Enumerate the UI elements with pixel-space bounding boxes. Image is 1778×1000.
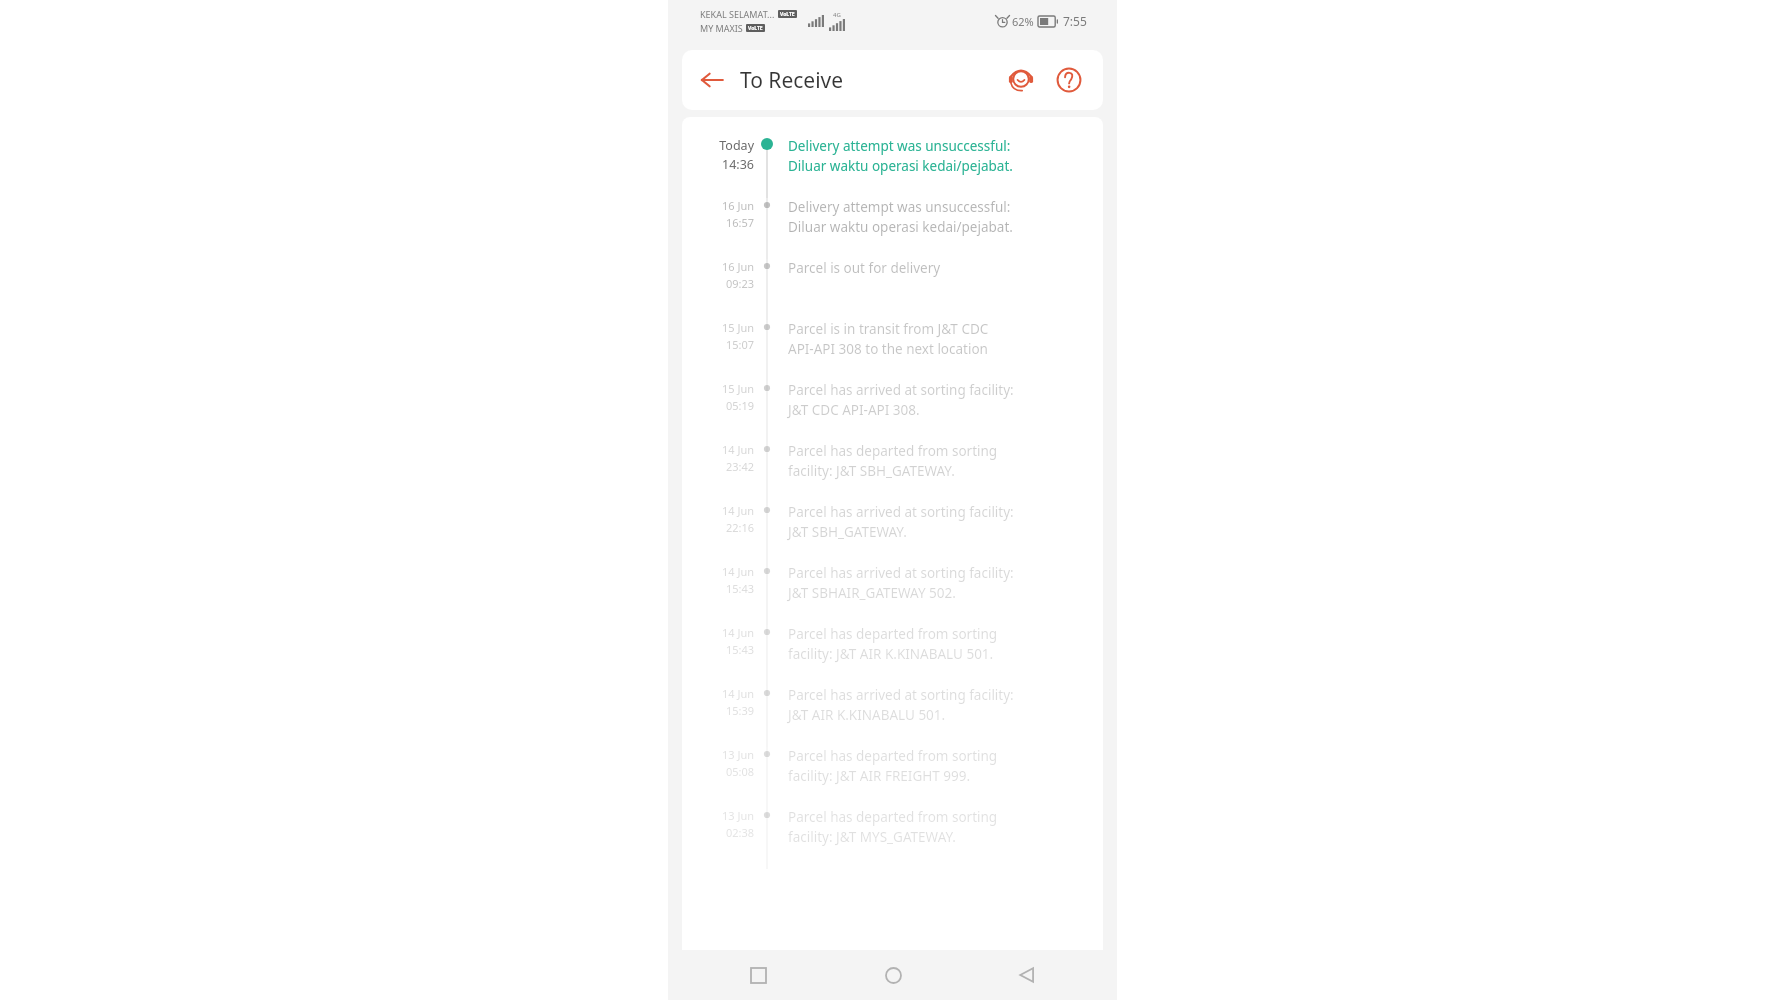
staticText: Delivery attempt was unsuccessful:	[788, 198, 1011, 216]
staticText: 14 Jun	[721, 564, 754, 579]
staticText: Delivery attempt was unsuccessful:	[788, 137, 1011, 155]
button[interactable]: Back	[1005, 953, 1049, 997]
button[interactable]: 16 Jun	[682, 259, 1103, 320]
button[interactable]: Help	[1047, 58, 1091, 102]
button[interactable]: 16 Jun	[682, 198, 1103, 259]
button[interactable]: Recent apps	[736, 953, 780, 997]
staticText: Parcel has arrived at sorting facility:	[788, 503, 1014, 521]
button[interactable]: Customer service	[999, 58, 1043, 102]
button[interactable]: 14 Jun	[682, 625, 1103, 686]
staticText: 13 Jun	[721, 808, 754, 823]
staticText: To Receive	[740, 66, 844, 95]
staticText: 7:55	[1063, 13, 1087, 29]
staticText: 05:08	[725, 764, 754, 779]
staticText: Parcel has arrived at sorting facility:	[788, 381, 1014, 399]
staticText: Diluar waktu operasi kedai/pejabat.	[788, 218, 1013, 236]
button[interactable]: 13 Jun	[682, 808, 1103, 869]
button[interactable]: Back	[690, 58, 734, 102]
staticText: 16:57	[725, 215, 754, 230]
staticText: facility: J&T SBH_GATEWAY.	[788, 462, 955, 480]
staticText: 14 Jun	[721, 686, 754, 701]
staticText: 4G	[833, 11, 841, 19]
staticText: KEKAL SELAMAT...	[700, 8, 775, 20]
staticText: Diluar waktu operasi kedai/pejabat.	[788, 157, 1013, 175]
button[interactable]: Home	[871, 953, 915, 997]
button[interactable]: 14 Jun	[682, 686, 1103, 747]
staticText: VoLTE	[780, 11, 795, 18]
staticText: 15:39	[725, 703, 754, 718]
staticText: J&T CDC API-API 308.	[788, 401, 920, 419]
staticText: 14:36	[722, 156, 754, 173]
staticText: Parcel has arrived at sorting facility:	[788, 686, 1014, 704]
staticText: Parcel has arrived at sorting facility:	[788, 564, 1014, 582]
staticText: 02:38	[725, 825, 754, 840]
staticText: Today	[719, 137, 754, 154]
staticText: Parcel is in transit from J&T CDC	[788, 320, 989, 338]
staticText: facility: J&T AIR K.KINABALU 501.	[788, 645, 994, 663]
button[interactable]: Today	[682, 137, 1103, 198]
staticText: 22:16	[725, 520, 754, 535]
staticText: J&T AIR K.KINABALU 501.	[788, 706, 946, 724]
staticText: Parcel has departed from sorting	[788, 442, 998, 460]
staticText: Parcel has departed from sorting	[788, 747, 998, 765]
button[interactable]: 15 Jun	[682, 381, 1103, 442]
staticText: 15 Jun	[721, 381, 754, 396]
staticText: 15 Jun	[721, 320, 754, 335]
button[interactable]: 14 Jun	[682, 442, 1103, 503]
staticText: 14 Jun	[721, 625, 754, 640]
button[interactable]: 14 Jun	[682, 564, 1103, 625]
staticText: 16 Jun	[721, 259, 754, 274]
button[interactable]: 14 Jun	[682, 503, 1103, 564]
staticText: 15:43	[725, 581, 754, 596]
staticText: J&T SBHAIR_GATEWAY 502.	[788, 584, 956, 602]
staticText: MY MAXIS	[700, 22, 743, 34]
staticText: 15:07	[725, 337, 754, 352]
staticText: 62%	[1012, 14, 1034, 29]
staticText: 15:43	[725, 642, 754, 657]
staticText: VoLTE	[748, 25, 763, 32]
staticText: 14 Jun	[721, 442, 754, 457]
staticText: 14 Jun	[721, 503, 754, 518]
button[interactable]: 15 Jun	[682, 320, 1103, 381]
staticText: facility: J&T AIR FREIGHT 999.	[788, 767, 971, 785]
staticText: 13 Jun	[721, 747, 754, 762]
staticText: J&T SBH_GATEWAY.	[788, 523, 907, 541]
staticText: 09:23	[725, 276, 754, 291]
staticText: API-API 308 to the next location	[788, 340, 988, 358]
staticText: Parcel is out for delivery	[788, 259, 941, 277]
staticText: 23:42	[725, 459, 754, 474]
staticText: 05:19	[725, 398, 754, 413]
staticText: Parcel has departed from sorting	[788, 808, 998, 826]
staticText: Parcel has departed from sorting	[788, 625, 998, 643]
staticText: facility: J&T MYS_GATEWAY.	[788, 828, 956, 846]
button[interactable]: 13 Jun	[682, 747, 1103, 808]
staticText: 16 Jun	[721, 198, 754, 213]
